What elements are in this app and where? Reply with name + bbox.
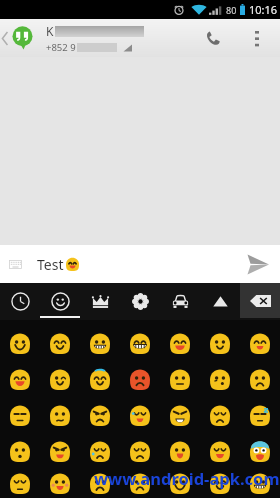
button[interactable]: Emoji [200,470,240,498]
button[interactable]: Backspace [240,283,280,318]
button[interactable]: Emoji [0,434,40,470]
button[interactable]: More options [234,19,280,57]
staticText: +852 9 [46,41,76,54]
button[interactable]: Emoji [80,362,120,398]
staticText: www.android-apk.com [94,467,280,489]
button[interactable]: Emoji [40,362,80,398]
button[interactable]: Emoji [200,434,240,470]
staticText: 80 [226,4,237,16]
button[interactable]: Emoji [40,434,80,470]
button[interactable]: Emoji [40,326,80,362]
button[interactable]: Recent [0,283,40,320]
button[interactable]: Emoji [160,470,200,498]
button[interactable]: Emoji [80,398,120,434]
button[interactable]: Travel [160,283,200,320]
button[interactable]: Smileys [40,283,80,320]
button[interactable]: Call [192,19,234,57]
button[interactable]: Emoji [160,398,200,434]
button[interactable]: Emoji [200,398,240,434]
button[interactable]: Emoji [40,470,80,498]
button[interactable]: Objects [80,283,120,320]
button[interactable]: Emoji [160,434,200,470]
button[interactable]: Emoji [0,470,40,498]
button[interactable]: Emoji [240,398,280,434]
button[interactable]: Emoji [80,326,120,362]
button[interactable]: Emoji [240,326,280,362]
button[interactable]: Emoji [0,326,40,362]
button[interactable]: Emoji [0,362,40,398]
button[interactable]: Send [236,245,280,283]
button[interactable]: Emoji [80,434,120,470]
staticText: Test [37,255,64,274]
button[interactable]: Emoji [0,398,40,434]
button[interactable]: Emoji [120,362,160,398]
button[interactable]: Emoji [40,398,80,434]
button[interactable]: Emoji [240,434,280,470]
button[interactable]: Emoji [240,362,280,398]
button[interactable]: Emoji [200,326,240,362]
button[interactable]: Emoji [160,362,200,398]
button[interactable]: Places [200,283,240,320]
button[interactable]: Navigate up [0,19,34,57]
button[interactable]: Emoji [120,398,160,434]
button[interactable]: Nature [120,283,160,320]
staticText: 10:16 [249,2,278,17]
button[interactable]: Emoji [80,470,120,498]
button[interactable]: Emoji [200,362,240,398]
button[interactable]: Keyboard [0,245,37,283]
button[interactable]: Emoji [120,326,160,362]
button[interactable]: Emoji [120,470,160,498]
staticText: K [46,23,54,39]
button[interactable]: Emoji [240,470,280,498]
button[interactable]: Emoji [160,326,200,362]
button[interactable]: Emoji [120,434,160,470]
